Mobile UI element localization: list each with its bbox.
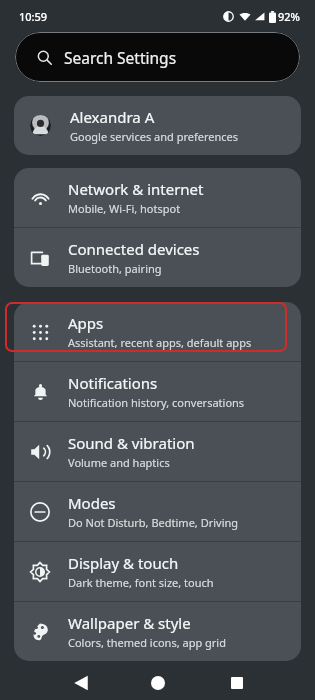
staticText: Display & touch	[68, 553, 179, 573]
staticText: Sound & vibration	[68, 433, 195, 453]
staticText: Volume and haptics	[68, 455, 170, 470]
staticText: Bluetooth, pairing	[68, 261, 162, 276]
staticText: Dark theme, font size, touch	[68, 575, 214, 590]
staticText: Notifications	[68, 373, 158, 393]
staticText: Modes	[68, 493, 116, 513]
staticText: Apps	[68, 313, 104, 333]
button[interactable]: Network & internet	[14, 168, 301, 227]
staticText: Google services and preferences	[70, 129, 238, 144]
staticText: Connected devices	[68, 239, 200, 259]
button[interactable]: Recent apps	[224, 670, 250, 696]
button[interactable]: Connected devices	[14, 228, 301, 287]
staticText: 92%	[278, 9, 300, 24]
staticText: Colors, themed icons, app grid	[68, 635, 226, 650]
button[interactable]: Back	[68, 670, 94, 696]
button[interactable]: Modes	[14, 482, 301, 541]
staticText: Do Not Disturb, Bedtime, Driving	[68, 515, 239, 530]
button[interactable]: Wallpaper & style	[14, 602, 301, 661]
staticText: Wallpaper & style	[68, 613, 191, 633]
staticText: Search Settings	[64, 47, 177, 68]
staticText: Notification history, conversations	[68, 395, 245, 410]
button[interactable]: Sound & vibration	[14, 422, 301, 481]
staticText: Network & internet	[68, 179, 204, 199]
button[interactable]: Search Settings	[15, 32, 300, 82]
staticText: 10:59	[19, 9, 48, 24]
button[interactable]: Notifications	[14, 362, 301, 421]
staticText: Mobile, Wi-Fi, hotspot	[68, 201, 181, 216]
staticText: Alexandra A	[70, 107, 155, 127]
staticText: Assistant, recent apps, default apps	[68, 335, 252, 350]
button[interactable]: Alexandra A	[14, 96, 301, 155]
button[interactable]: Home	[145, 670, 171, 696]
button[interactable]: Display & touch	[14, 542, 301, 601]
button[interactable]: Apps	[14, 302, 301, 361]
